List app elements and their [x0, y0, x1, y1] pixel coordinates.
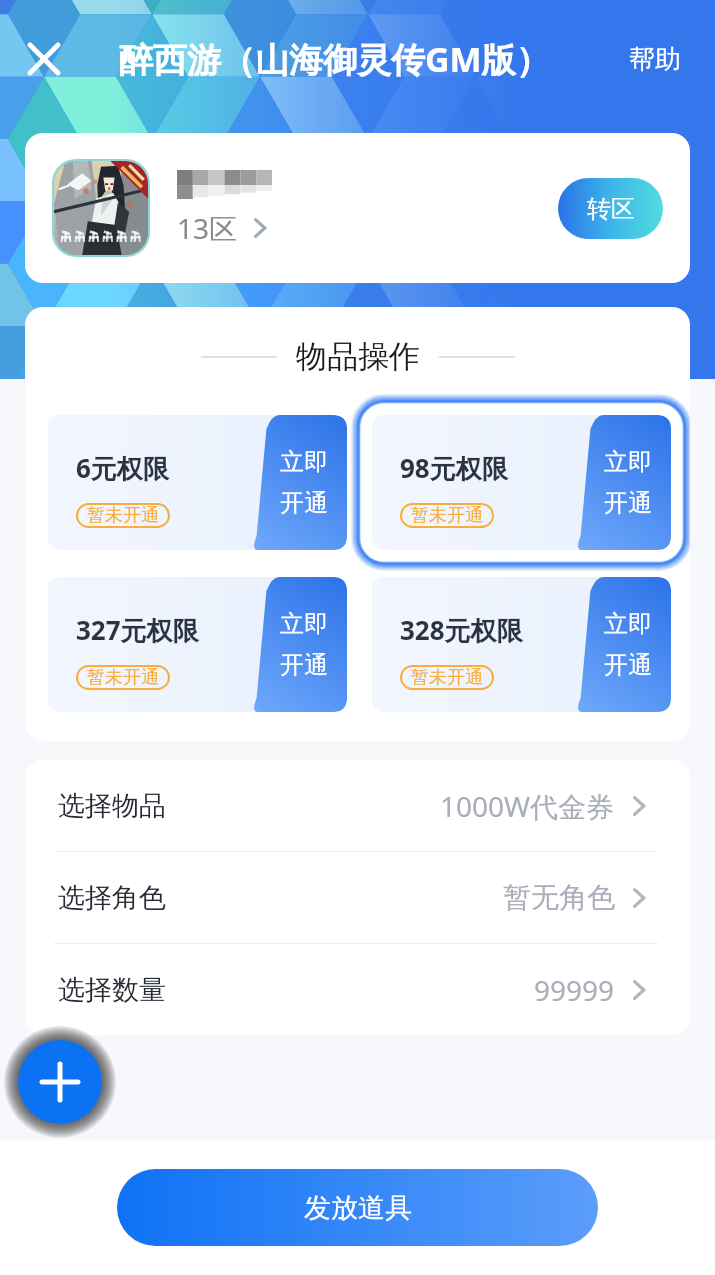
- button[interactable]: 98元权限: [372, 415, 671, 550]
- staticText: 暂无角色: [503, 880, 615, 915]
- staticText: 开通: [604, 650, 652, 680]
- staticText: 帮助: [629, 43, 681, 76]
- button[interactable]: 帮助: [608, 35, 715, 84]
- button[interactable]: 328元权限: [372, 577, 671, 712]
- staticText: 发放道具: [304, 1191, 412, 1225]
- staticText: 暂未开通: [411, 666, 483, 689]
- staticText: 328元权限: [400, 612, 523, 648]
- button[interactable]: 327元权限: [48, 577, 347, 712]
- staticText: 暂未开通: [411, 504, 483, 527]
- staticText: 选择物品: [58, 789, 166, 823]
- button[interactable]: 6元权限: [48, 415, 347, 550]
- button[interactable]: 选择数量: [25, 944, 690, 1035]
- button[interactable]: 选择物品: [25, 760, 690, 851]
- button[interactable]: Close: [16, 31, 72, 87]
- staticText: 转区: [587, 194, 635, 224]
- button[interactable]: 发放道具: [117, 1169, 598, 1246]
- button[interactable]: Add: [18, 1040, 102, 1124]
- staticText: 醉西游（山海御灵传GM版）: [119, 36, 550, 82]
- staticText: 选择数量: [58, 973, 166, 1007]
- staticText: 327元权限: [76, 612, 199, 648]
- staticText: 暂未开通: [87, 666, 159, 689]
- staticText: 开通: [280, 488, 328, 518]
- staticText: 物品操作: [296, 337, 420, 376]
- button[interactable]: 选择角色: [25, 852, 690, 943]
- staticText: 立即: [280, 609, 328, 639]
- staticText: 立即: [604, 447, 652, 477]
- staticText: 开通: [280, 650, 328, 680]
- button[interactable]: 转区: [558, 178, 663, 239]
- staticText: 立即: [280, 447, 328, 477]
- staticText: 99999: [534, 971, 615, 1009]
- staticText: 1000W代金券: [440, 787, 615, 825]
- staticText: 开通: [604, 488, 652, 518]
- staticText: 暂未开通: [87, 504, 159, 527]
- staticText: 13区: [177, 209, 238, 247]
- staticText: 立即: [604, 609, 652, 639]
- staticText: 98元权限: [400, 450, 508, 486]
- staticText: 选择角色: [58, 881, 166, 915]
- staticText: 6元权限: [76, 450, 169, 486]
